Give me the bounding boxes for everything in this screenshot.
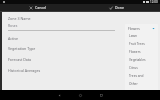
staticText: Trees and Bushes: [129, 74, 154, 78]
staticText: Vegetables: [129, 58, 146, 62]
staticText: Forecast Data: [8, 57, 32, 62]
button[interactable]: Back: [55, 91, 63, 99]
button[interactable]: Flowers: [126, 48, 157, 56]
staticText: Flowers: [129, 50, 141, 54]
button[interactable]: Flowers: [126, 25, 157, 31]
staticText: Active: [8, 36, 19, 41]
other: Cancel: [29, 6, 33, 10]
button[interactable]: Vegetation Type: [8, 46, 100, 51]
button[interactable]: Historical Averages: [8, 68, 100, 73]
staticText: Roses: [8, 23, 18, 28]
button[interactable]: Home: [76, 91, 84, 99]
staticText: Citrus: [129, 66, 138, 70]
button[interactable]: Trees and Bushes: [126, 72, 157, 80]
button[interactable]: Done: [106, 4, 127, 11]
staticText: Fruit Trees: [129, 42, 145, 46]
staticText: Lawn: [129, 34, 137, 38]
button[interactable]: Recents: [97, 91, 105, 99]
staticText: Other: [129, 82, 138, 86]
button[interactable]: Cancel: [26, 4, 50, 11]
staticText: Historical Averages: [8, 68, 41, 73]
staticText: Done: [115, 5, 124, 10]
button[interactable]: Vegetables: [126, 56, 157, 64]
staticText: Vegetation Type: [8, 46, 36, 51]
button[interactable]: Active: [8, 36, 156, 41]
button[interactable]: Lawn: [126, 32, 157, 40]
staticText: Zone 3 Name: [8, 16, 31, 21]
button[interactable]: Other: [126, 80, 157, 88]
staticText: Cancel: [35, 5, 47, 10]
other: Done: [109, 6, 113, 10]
button[interactable]: Forecast Data: [8, 57, 100, 62]
staticText: 12:00: [150, 0, 158, 4]
button[interactable]: Citrus: [126, 64, 157, 72]
button[interactable]: Fruit Trees: [126, 40, 157, 48]
button[interactable]: Zone 3 Name: [8, 16, 115, 31]
other: Open list: [152, 27, 155, 30]
staticText: Flowers: [128, 26, 140, 30]
